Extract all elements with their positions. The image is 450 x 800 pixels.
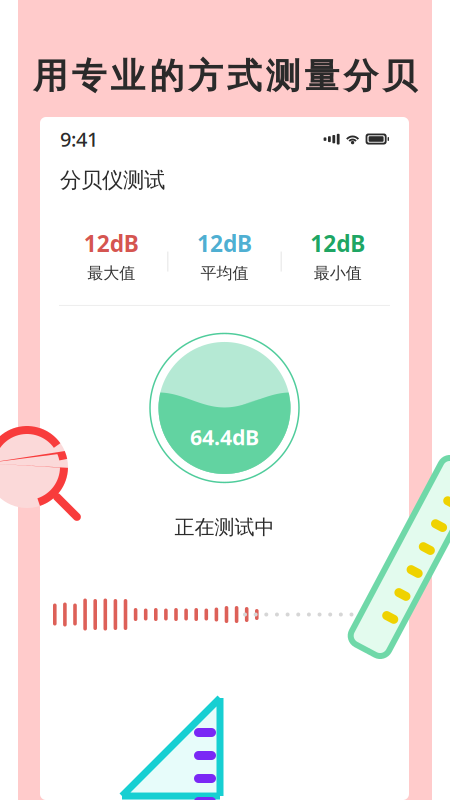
- staticText: 64.4dB: [190, 423, 259, 451]
- staticText: 平均值: [200, 263, 248, 283]
- staticText: 12dB: [310, 228, 365, 258]
- staticText: 最小值: [314, 263, 362, 283]
- staticText: 12dB: [197, 228, 252, 258]
- staticText: 12dB: [84, 228, 139, 258]
- staticText: 9:41: [60, 126, 98, 152]
- staticText: 正在测试中: [174, 515, 274, 540]
- staticText: 最大值: [87, 263, 135, 283]
- staticText: 分贝仪测试: [60, 167, 165, 193]
- staticText: 用专业的方式测量分贝: [33, 55, 417, 98]
